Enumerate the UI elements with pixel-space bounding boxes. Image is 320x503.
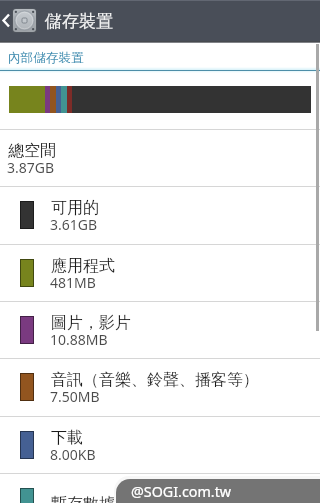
staticText: 下載 [51, 428, 83, 448]
staticText: 3.61GB [50, 215, 98, 234]
button[interactable]: 暫存數據 [0, 474, 320, 503]
button[interactable]: 總空間 [0, 130, 320, 186]
staticText: 總空間 [8, 141, 56, 161]
button[interactable]: 下載 [0, 417, 320, 473]
staticText: 8.00KB [50, 445, 96, 464]
staticText: 內部儲存裝置 [8, 50, 84, 66]
staticText: 3.87GB [7, 158, 55, 177]
staticText: 481MB [50, 273, 96, 292]
button[interactable]: 音訊（音樂、鈴聲、播客等） [0, 359, 320, 415]
staticText: 圖片，影片 [51, 313, 131, 333]
button[interactable]: 可用的 [0, 187, 320, 243]
staticText: 應用程式 [51, 256, 115, 276]
button[interactable]: Back [0, 0, 38, 41]
staticText: 儲存裝置 [45, 11, 113, 32]
staticText: 可用的 [51, 198, 99, 218]
staticText: 音訊（音樂、鈴聲、播客等） [51, 370, 259, 390]
button[interactable]: 圖片，影片 [0, 302, 320, 358]
staticText: 暫存數據 [51, 494, 115, 503]
staticText: 7.50MB [50, 387, 100, 406]
staticText: 10.88MB [50, 330, 108, 349]
button[interactable]: 應用程式 [0, 245, 320, 301]
staticText: @SOGI.com.tw [131, 482, 232, 501]
